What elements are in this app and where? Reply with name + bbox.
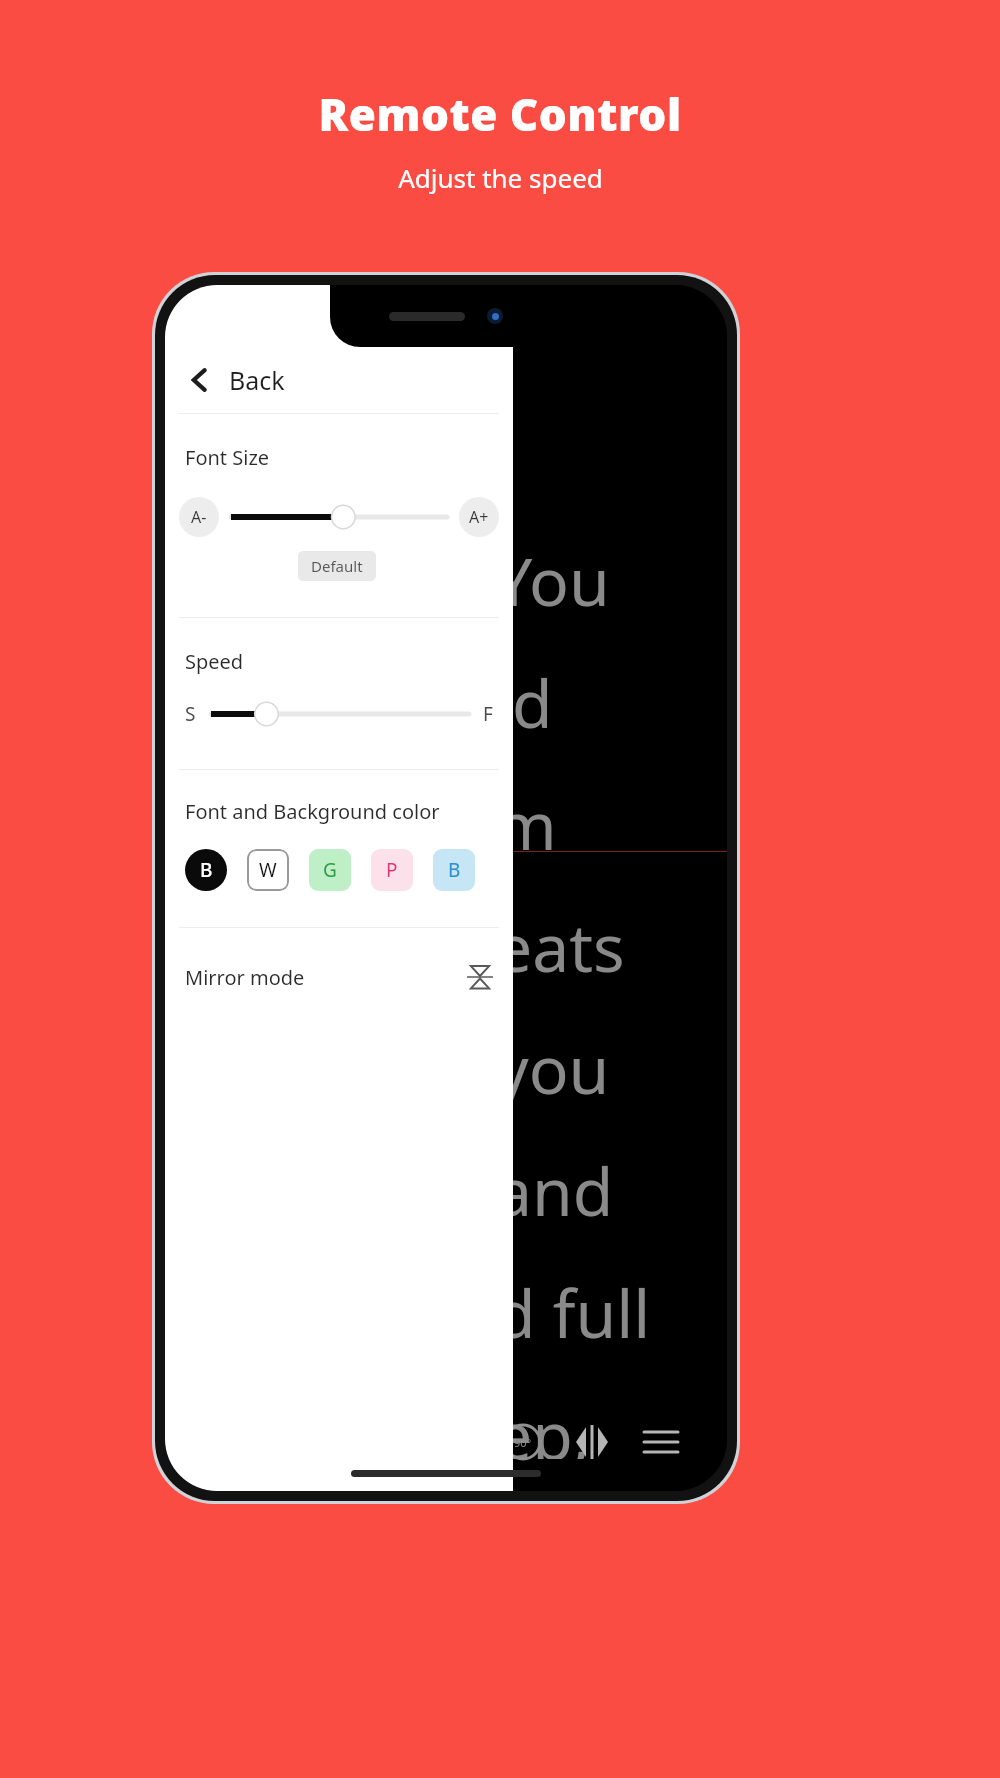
button[interactable]: W [247, 849, 289, 891]
staticText: P [386, 857, 398, 883]
staticText: A- [191, 506, 207, 528]
staticText: Mirror mode [185, 964, 305, 991]
button[interactable]: Mirror [569, 1419, 615, 1465]
button[interactable]: G [309, 849, 351, 891]
button[interactable]: Back [165, 347, 513, 413]
staticText: Back [229, 363, 285, 397]
button[interactable]: Mirror mode [165, 954, 513, 1000]
staticText: eats [495, 901, 625, 991]
staticText: G [323, 857, 337, 883]
staticText: S [185, 701, 211, 727]
staticText: and [495, 1145, 614, 1235]
staticText: B [200, 857, 213, 883]
button[interactable]: P [371, 849, 413, 891]
staticText: A+ [469, 506, 489, 528]
button[interactable]: B [185, 849, 227, 891]
staticText: Font and Background color [185, 798, 440, 825]
staticText: d full [495, 1267, 651, 1357]
staticText: Default [311, 556, 363, 576]
staticText: ep, [495, 1389, 591, 1459]
button[interactable]: Default [298, 551, 376, 581]
button[interactable]: Menu [638, 1419, 684, 1465]
staticText: Remote Control [318, 84, 682, 144]
staticText: 90° [514, 1435, 532, 1450]
staticText: W [259, 857, 277, 883]
staticText: you [495, 1023, 610, 1113]
staticText: ld [495, 657, 553, 747]
button[interactable]: A+ [459, 497, 499, 537]
staticText: Font Size [185, 444, 270, 471]
staticText: You [495, 535, 610, 625]
staticText: Adjust the speed [398, 160, 603, 195]
button[interactable]: B [433, 849, 475, 891]
staticText: m [495, 779, 557, 869]
staticText: Speed [185, 648, 244, 675]
staticText: B [448, 857, 461, 883]
button[interactable]: A- [179, 497, 219, 537]
staticText: F [483, 701, 493, 727]
button[interactable]: Rotate 90 degrees [500, 1419, 546, 1465]
